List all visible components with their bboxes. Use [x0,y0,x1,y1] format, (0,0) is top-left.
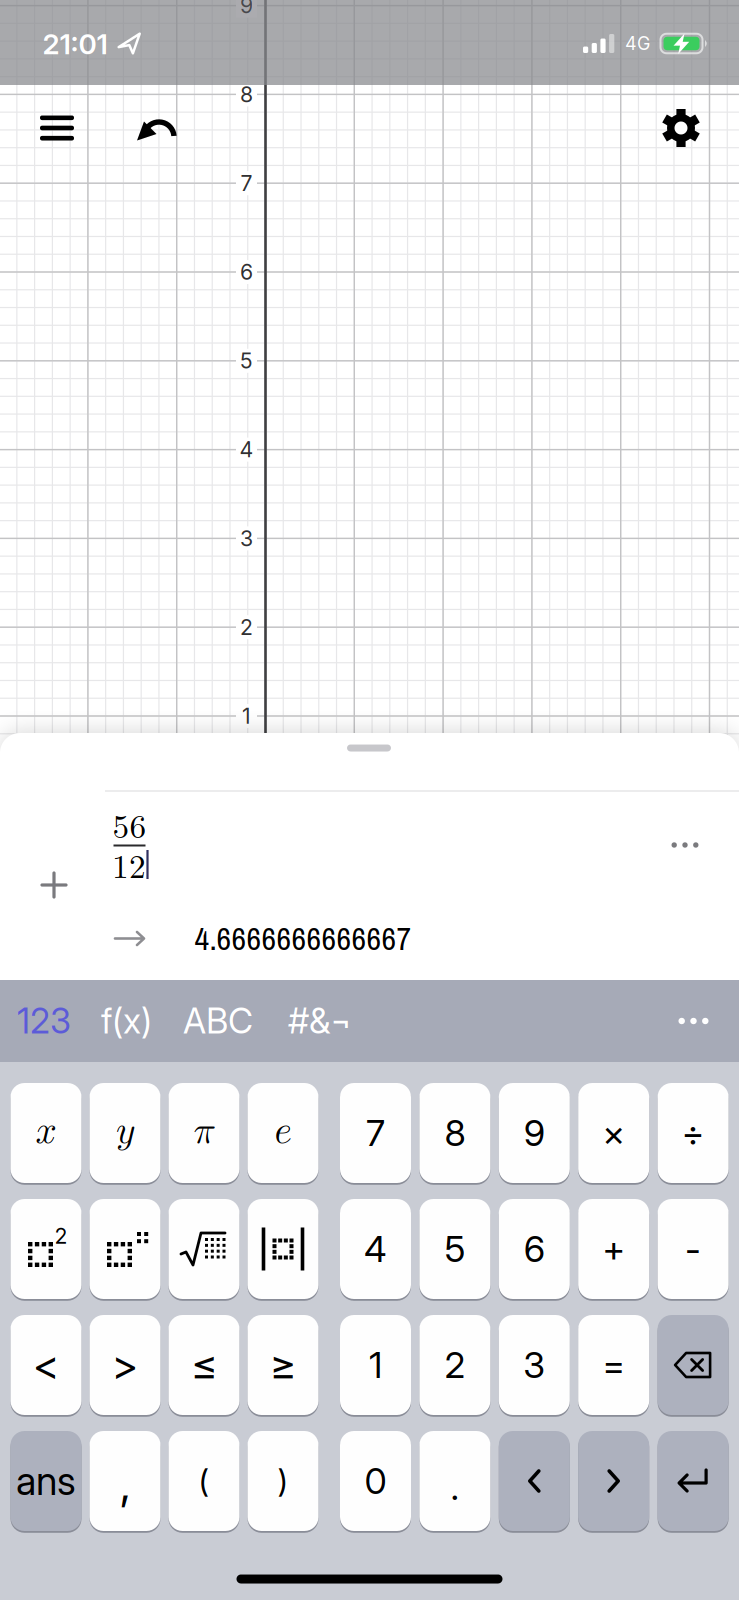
staticText: , [119,1458,131,1510]
button[interactable]: 3 [499,1313,570,1416]
button[interactable]: - [658,1197,729,1300]
button[interactable]: 0 [340,1429,411,1532]
button[interactable]: + [578,1197,649,1300]
staticText: ≤ [191,1340,217,1390]
staticText: 0 [364,1459,386,1503]
button[interactable]: ABC [178,991,258,1051]
button[interactable]: ≥ [247,1313,318,1416]
button[interactable]: > [89,1313,160,1416]
button[interactable]: x [10,1081,81,1184]
button[interactable]: Undo [134,106,178,150]
staticText: 123 [17,1000,71,1042]
staticText: 2 [54,1223,67,1249]
button[interactable]: comma [89,1429,160,1532]
staticText: 1 [369,1343,382,1387]
button[interactable]: e [247,1081,318,1184]
button[interactable]: Absolute value [247,1197,318,1300]
button[interactable]: 123 [8,991,80,1051]
staticText: 12 [112,840,146,888]
staticText: ABC [183,1000,253,1042]
button[interactable]: Settings [659,106,703,150]
button[interactable]: < [10,1313,81,1416]
staticText: 2 [240,614,253,640]
button[interactable]: point [419,1429,490,1532]
staticText: 6 [524,1227,545,1271]
staticText: > [112,1340,138,1390]
staticText: 8 [444,1111,465,1155]
button[interactable]: Delete [658,1313,729,1416]
button[interactable]: Cursor right [578,1429,649,1532]
button[interactable]: close parenthesis [247,1429,318,1532]
staticText: + [602,1227,625,1271]
staticText: 𝑦 [116,1112,134,1150]
staticText: 4G [625,33,650,54]
button[interactable]: 1 [340,1313,411,1416]
staticText: ( [198,1462,209,1500]
staticText: 4.6666666666667 [194,917,411,960]
button[interactable]: 8 [419,1081,490,1184]
button[interactable]: 6 [499,1197,570,1300]
staticText: #&¬ [288,1000,352,1042]
staticText: ans [16,1458,76,1504]
staticText: 5 [444,1227,465,1271]
staticText: ÷ [682,1111,705,1155]
staticText: ≥ [270,1340,296,1390]
staticText: 9 [240,0,253,18]
staticText: 2 [444,1343,465,1387]
staticText: 4 [239,437,253,462]
button[interactable]: Power [89,1197,160,1300]
button[interactable]: New expression [38,869,70,901]
staticText: 21:01 [42,27,107,61]
button[interactable]: 5 [419,1197,490,1300]
staticText: 3 [523,1343,545,1387]
staticText: . [450,1465,459,1509]
staticText: f(x) [101,1000,152,1042]
staticText: - [685,1227,701,1271]
button[interactable]: 2 [419,1313,490,1416]
staticText: 5 [240,348,253,374]
staticText: 𝜋 [193,1112,214,1150]
staticText: 𝑒 [274,1112,291,1150]
button[interactable]: Expression options [663,829,707,861]
staticText: 7 [366,1111,385,1155]
button[interactable]: Square [10,1197,81,1300]
staticText: 𝑥 [35,1112,56,1150]
button[interactable]: = [578,1313,649,1416]
staticText: = [602,1343,625,1387]
staticText: ) [277,1462,288,1500]
button[interactable]: ans [10,1429,81,1532]
button[interactable]: 4 [340,1197,411,1300]
staticText: 1 [242,703,251,729]
button[interactable]: f(x) [88,991,164,1051]
button[interactable]: Cursor left [499,1429,570,1532]
button[interactable]: 9 [499,1081,570,1184]
button[interactable]: ≤ [168,1313,239,1416]
staticText: × [602,1111,625,1155]
button[interactable]: × [578,1081,649,1184]
button[interactable]: More keyboards [665,991,721,1051]
staticText: 8 [240,81,253,107]
button[interactable]: Menu [35,106,79,150]
button[interactable]: pi [168,1081,239,1184]
button[interactable]: #&¬ [278,991,362,1051]
button[interactable]: ÷ [658,1081,729,1184]
button[interactable]: y [89,1081,160,1184]
button[interactable]: Enter [658,1429,729,1532]
button[interactable]: open parenthesis [168,1429,239,1532]
staticText: 4 [364,1227,387,1271]
button[interactable]: Square root [168,1197,239,1300]
staticText: 7 [240,170,252,196]
staticText: < [33,1340,59,1390]
staticText: 3 [240,525,253,551]
staticText: 6 [240,259,253,285]
staticText: 56 [112,800,146,848]
staticText: 9 [524,1111,545,1155]
button[interactable]: 7 [340,1081,411,1184]
